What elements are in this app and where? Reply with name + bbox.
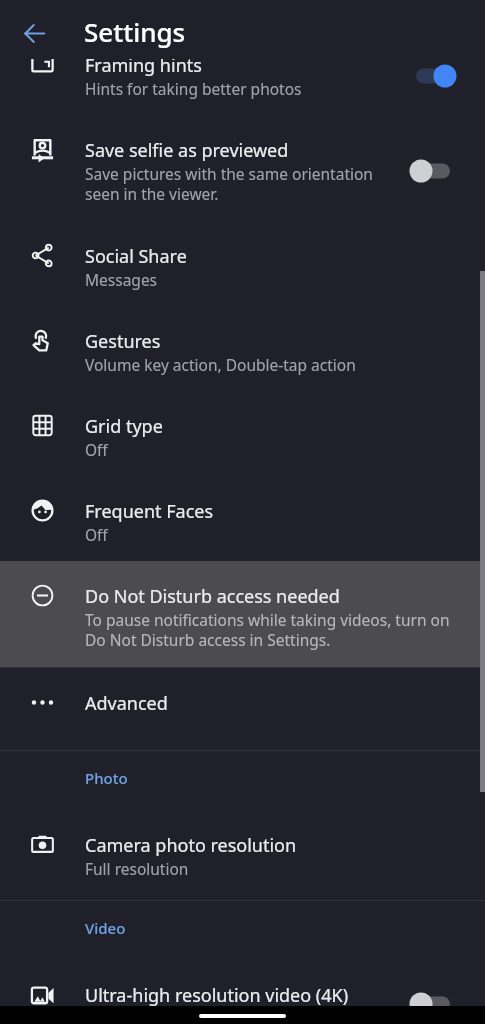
staticText: Messages: [85, 269, 158, 290]
button[interactable]: Framing hints: [0, 30, 485, 115]
staticText: Framing hints: [85, 53, 202, 78]
staticText: Do Not Disturb access needed: [85, 584, 340, 609]
staticText: Photo: [85, 768, 128, 788]
staticText: Camera photo resolution: [85, 833, 297, 858]
staticText: Social Share: [85, 244, 187, 269]
staticText: Gestures: [85, 329, 161, 354]
button[interactable]: Social Share: [0, 221, 485, 306]
button[interactable]: Gestures: [0, 306, 485, 391]
staticText: Video: [85, 918, 126, 938]
staticText: Advanced: [85, 691, 168, 716]
staticText: Save pictures with the same orientation …: [85, 163, 373, 205]
staticText: Save selfie as previewed: [85, 138, 289, 163]
button[interactable]: Ultra-high resolution video (4K): [0, 960, 485, 1024]
staticText: Volume key action, Double-tap action: [85, 354, 356, 375]
staticText: Full resolution: [85, 858, 189, 879]
staticText: Grid type: [85, 414, 163, 439]
button[interactable]: Toggle off: [409, 989, 457, 1019]
staticText: Hints for taking better photos: [85, 78, 302, 99]
button[interactable]: Toggle off: [409, 156, 457, 186]
staticText: Ultra-high resolution video (4K): [85, 983, 349, 1008]
button[interactable]: Toggle on: [409, 61, 457, 91]
button[interactable]: Back: [14, 13, 54, 53]
button[interactable]: Do Not Disturb access needed: [0, 561, 485, 667]
button[interactable]: Grid type: [0, 391, 485, 476]
button[interactable]: Frequent Faces: [0, 476, 485, 561]
button[interactable]: Save selfie as previewed: [0, 115, 485, 221]
button[interactable]: Camera photo resolution: [0, 810, 485, 900]
staticText: Off: [85, 439, 108, 460]
button[interactable]: Advanced: [0, 668, 485, 750]
staticText: Settings: [84, 14, 186, 49]
staticText: Frequent Faces: [85, 499, 214, 524]
staticText: To pause notifications while taking vide…: [85, 609, 450, 651]
staticText: Off: [85, 524, 108, 545]
